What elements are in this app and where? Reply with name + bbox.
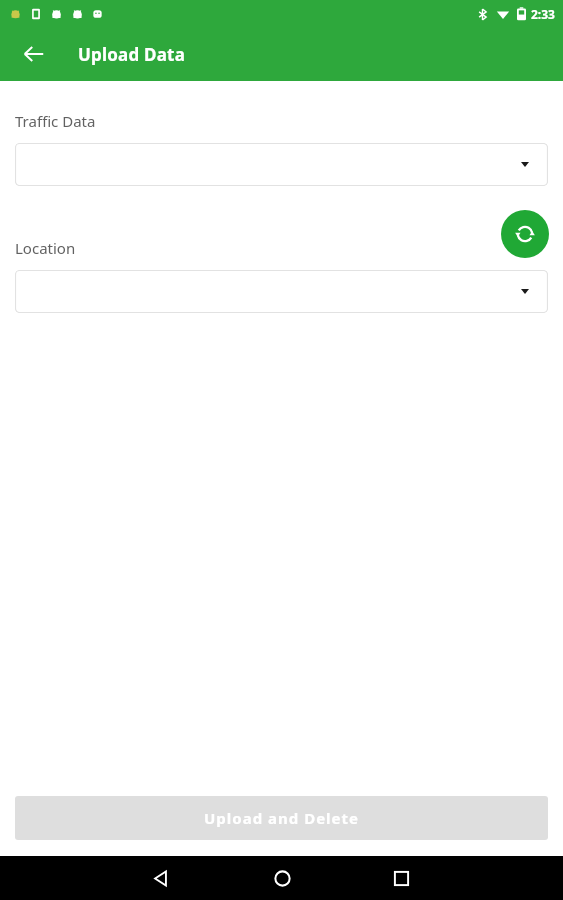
staticText: Upload and Delete xyxy=(204,808,359,828)
button[interactable]: Back xyxy=(138,856,182,900)
button[interactable]: Home xyxy=(260,856,304,900)
button[interactable] xyxy=(15,143,548,186)
button[interactable]: Refresh xyxy=(501,210,549,258)
button[interactable]: Recent apps xyxy=(379,856,423,900)
staticText: 2:33 xyxy=(531,6,555,22)
staticText: Location xyxy=(15,238,76,258)
button[interactable]: Back xyxy=(12,32,56,76)
button[interactable] xyxy=(15,270,548,313)
staticText: Upload Data xyxy=(78,43,186,66)
button[interactable]: Upload and Delete xyxy=(15,796,548,840)
staticText: Traffic Data xyxy=(15,111,96,131)
